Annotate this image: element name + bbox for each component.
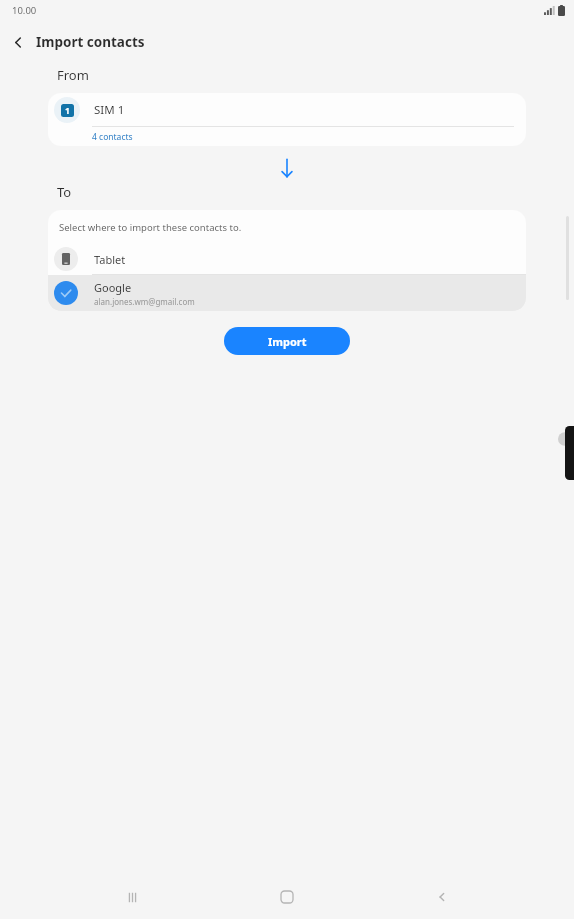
staticText: Import — [268, 334, 307, 349]
button[interactable]: Tablet — [48, 244, 526, 274]
button[interactable]: 1 — [48, 93, 526, 146]
button[interactable]: Back — [0, 24, 36, 60]
button[interactable]: Recents — [109, 875, 155, 919]
button[interactable]: Import — [224, 327, 350, 355]
staticText: Import contacts — [36, 33, 145, 51]
button[interactable]: Google — [48, 275, 526, 311]
staticText: 1 — [65, 105, 70, 117]
staticText: From — [57, 66, 89, 84]
staticText: Google — [94, 280, 132, 295]
staticText: Select where to import these contacts to… — [59, 221, 242, 234]
staticText: Tablet — [94, 252, 126, 267]
staticText: To — [57, 183, 72, 201]
staticText: 10.00 — [12, 4, 37, 17]
button[interactable]: Home — [264, 875, 310, 919]
staticText: SIM 1 — [94, 102, 125, 118]
staticText: alan.jones.wm@gmail.com — [94, 296, 195, 307]
staticText: 4 contacts — [92, 131, 133, 143]
button[interactable]: Back — [419, 875, 465, 919]
